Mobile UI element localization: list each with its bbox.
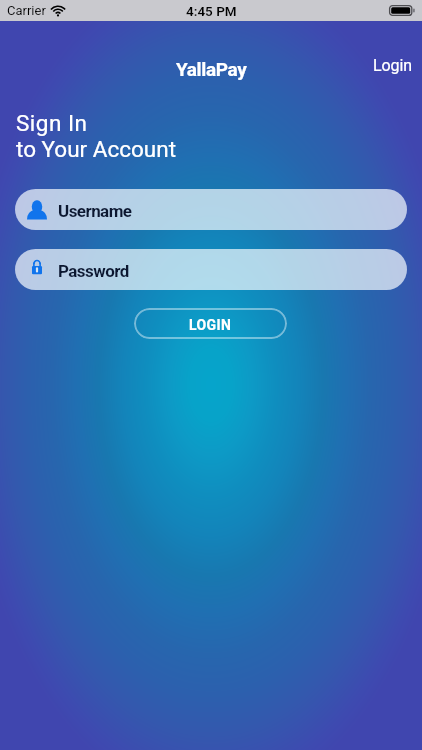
staticText: Sign In — [16, 110, 88, 136]
staticText: Username — [58, 201, 132, 221]
staticText: LOGIN — [189, 317, 232, 333]
staticText: 4:45 PM — [186, 3, 237, 19]
staticText: Login — [373, 56, 412, 75]
button[interactable]: Username — [15, 189, 407, 230]
staticText: Carrier — [7, 3, 46, 18]
staticText: Password — [58, 261, 129, 281]
button[interactable]: Password — [15, 249, 407, 290]
staticText: YallaPay — [176, 58, 247, 80]
button[interactable]: Login — [364, 49, 421, 82]
staticText: to Your Account — [16, 136, 177, 162]
button[interactable]: LOGIN — [134, 308, 287, 339]
